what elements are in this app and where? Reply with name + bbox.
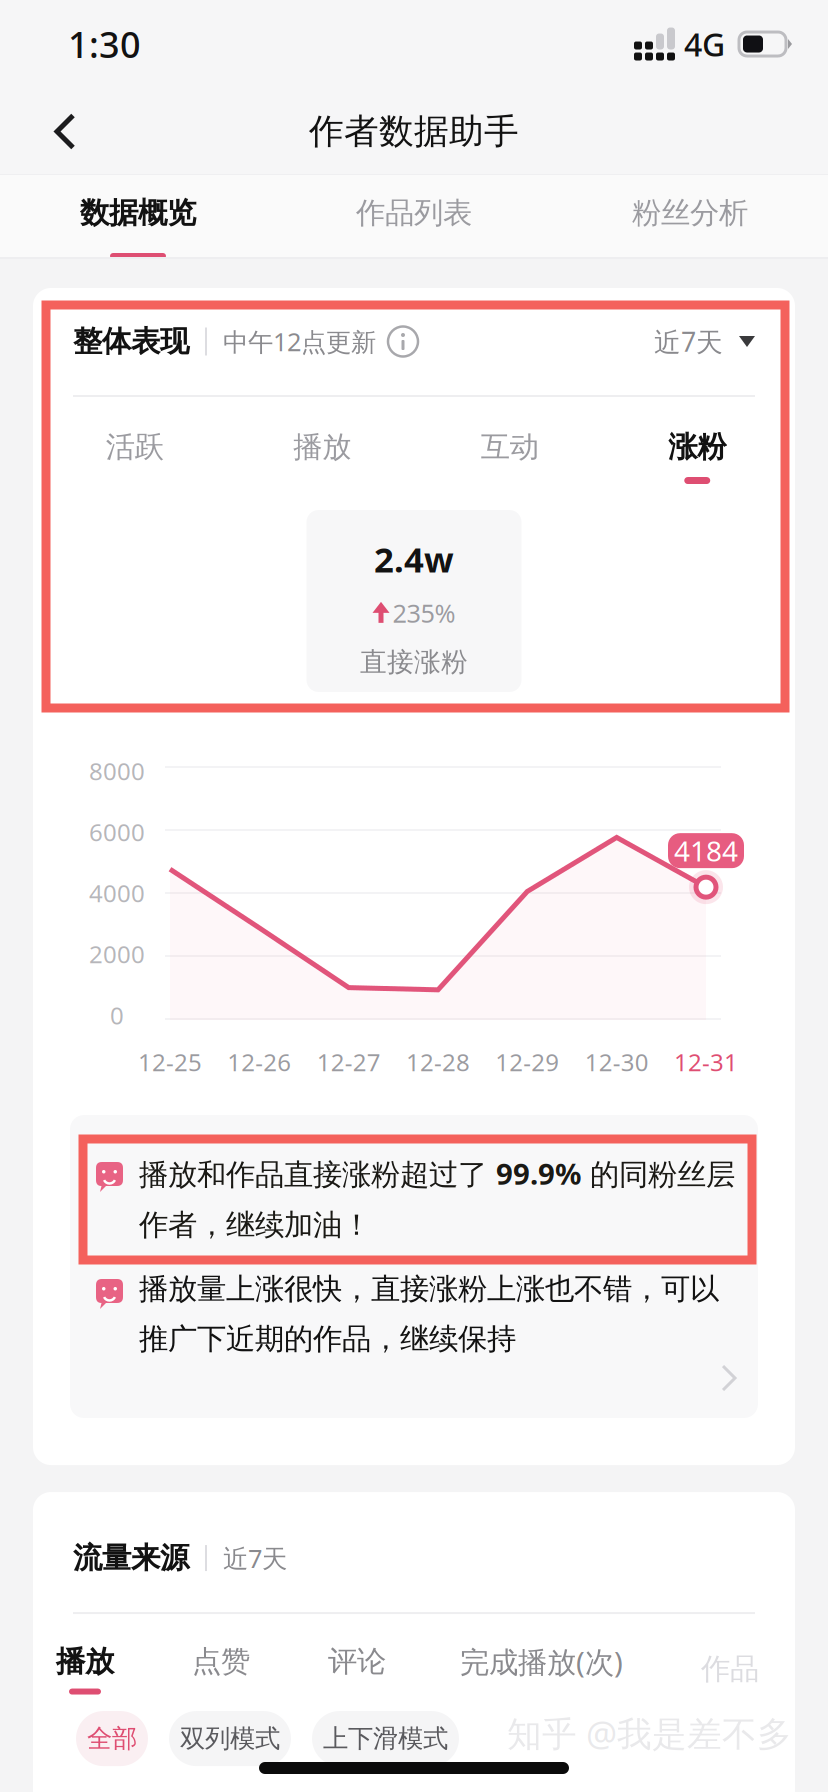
button[interactable]: 作品列表 — [276, 175, 552, 257]
button[interactable]: 完成播放(次) — [460, 1642, 623, 1696]
button[interactable]: 近7天 — [654, 324, 755, 359]
staticText: 全部 — [87, 1723, 137, 1754]
staticText: 1:30 — [68, 20, 141, 68]
staticText: 作品列表 — [356, 195, 472, 231]
button[interactable]: 评论 — [328, 1643, 386, 1694]
staticText: 双列模式 — [180, 1723, 280, 1754]
staticText: 中午12点更新 — [223, 325, 376, 358]
staticText: 2000 — [89, 938, 145, 970]
staticText: 12-29 — [495, 1046, 559, 1078]
staticText: 播放 — [293, 429, 351, 465]
staticText: 12-30 — [585, 1046, 649, 1078]
button[interactable]: 涨粉 — [603, 429, 791, 485]
staticText: 12-25 — [138, 1046, 202, 1078]
staticText: 4184 — [674, 832, 738, 869]
staticText: 播放 — [56, 1643, 114, 1679]
button[interactable]: Back — [0, 88, 110, 175]
staticText: 直接涨粉 — [360, 646, 468, 678]
staticText: 播放和作品直接涨粉超过了 99.9% 的同粉丝层作者，继续加油！ — [139, 1154, 735, 1243]
button[interactable]: 播放 — [228, 429, 416, 485]
button[interactable]: 全部 — [76, 1711, 148, 1766]
staticText: 粉丝分析 — [632, 195, 748, 231]
staticText: 4000 — [89, 877, 145, 909]
staticText: 4G — [684, 23, 725, 65]
staticText: 235% — [392, 596, 455, 630]
staticText: 8000 — [89, 755, 145, 787]
button[interactable]: 上下滑模式 — [312, 1711, 459, 1766]
staticText: 6000 — [89, 816, 145, 848]
staticText: 作品 — [701, 1651, 759, 1687]
staticText: 知乎 @我是差不多 — [507, 1710, 792, 1756]
button[interactable]: 活跃 — [41, 429, 228, 485]
staticText: 近7天 — [223, 1541, 287, 1575]
staticText: 完成播放(次) — [460, 1642, 623, 1681]
button[interactable]: 双列模式 — [169, 1711, 291, 1766]
staticText: 2.4w — [374, 536, 454, 582]
staticText: 12-31 — [674, 1046, 738, 1078]
staticText: 互动 — [481, 429, 539, 465]
staticText: 作者数据助手 — [309, 110, 519, 153]
staticText: 12-27 — [317, 1046, 381, 1078]
staticText: 播放量上涨很快，直接涨粉上涨也不错，可以推广下近期的作品，继续保持 — [139, 1271, 719, 1357]
staticText: 12-28 — [406, 1046, 470, 1078]
staticText: 0 — [110, 999, 124, 1031]
staticText: 近7天 — [654, 324, 723, 359]
staticText: 整体表现 — [73, 323, 189, 359]
staticText: 流量来源 — [73, 1540, 189, 1576]
staticText: 上下滑模式 — [323, 1723, 448, 1754]
staticText: 12-26 — [227, 1046, 291, 1078]
button[interactable]: 互动 — [416, 429, 603, 485]
staticText: 涨粉 — [668, 429, 726, 465]
staticText: 活跃 — [106, 429, 164, 465]
button[interactable]: 数据概览 — [0, 175, 276, 257]
staticText: 数据概览 — [80, 195, 196, 231]
button[interactable]: 点赞 — [192, 1643, 250, 1694]
button[interactable]: 粉丝分析 — [552, 175, 828, 257]
staticText: 评论 — [328, 1643, 386, 1679]
staticText: 点赞 — [192, 1643, 250, 1679]
button[interactable]: 播放 — [56, 1643, 114, 1694]
